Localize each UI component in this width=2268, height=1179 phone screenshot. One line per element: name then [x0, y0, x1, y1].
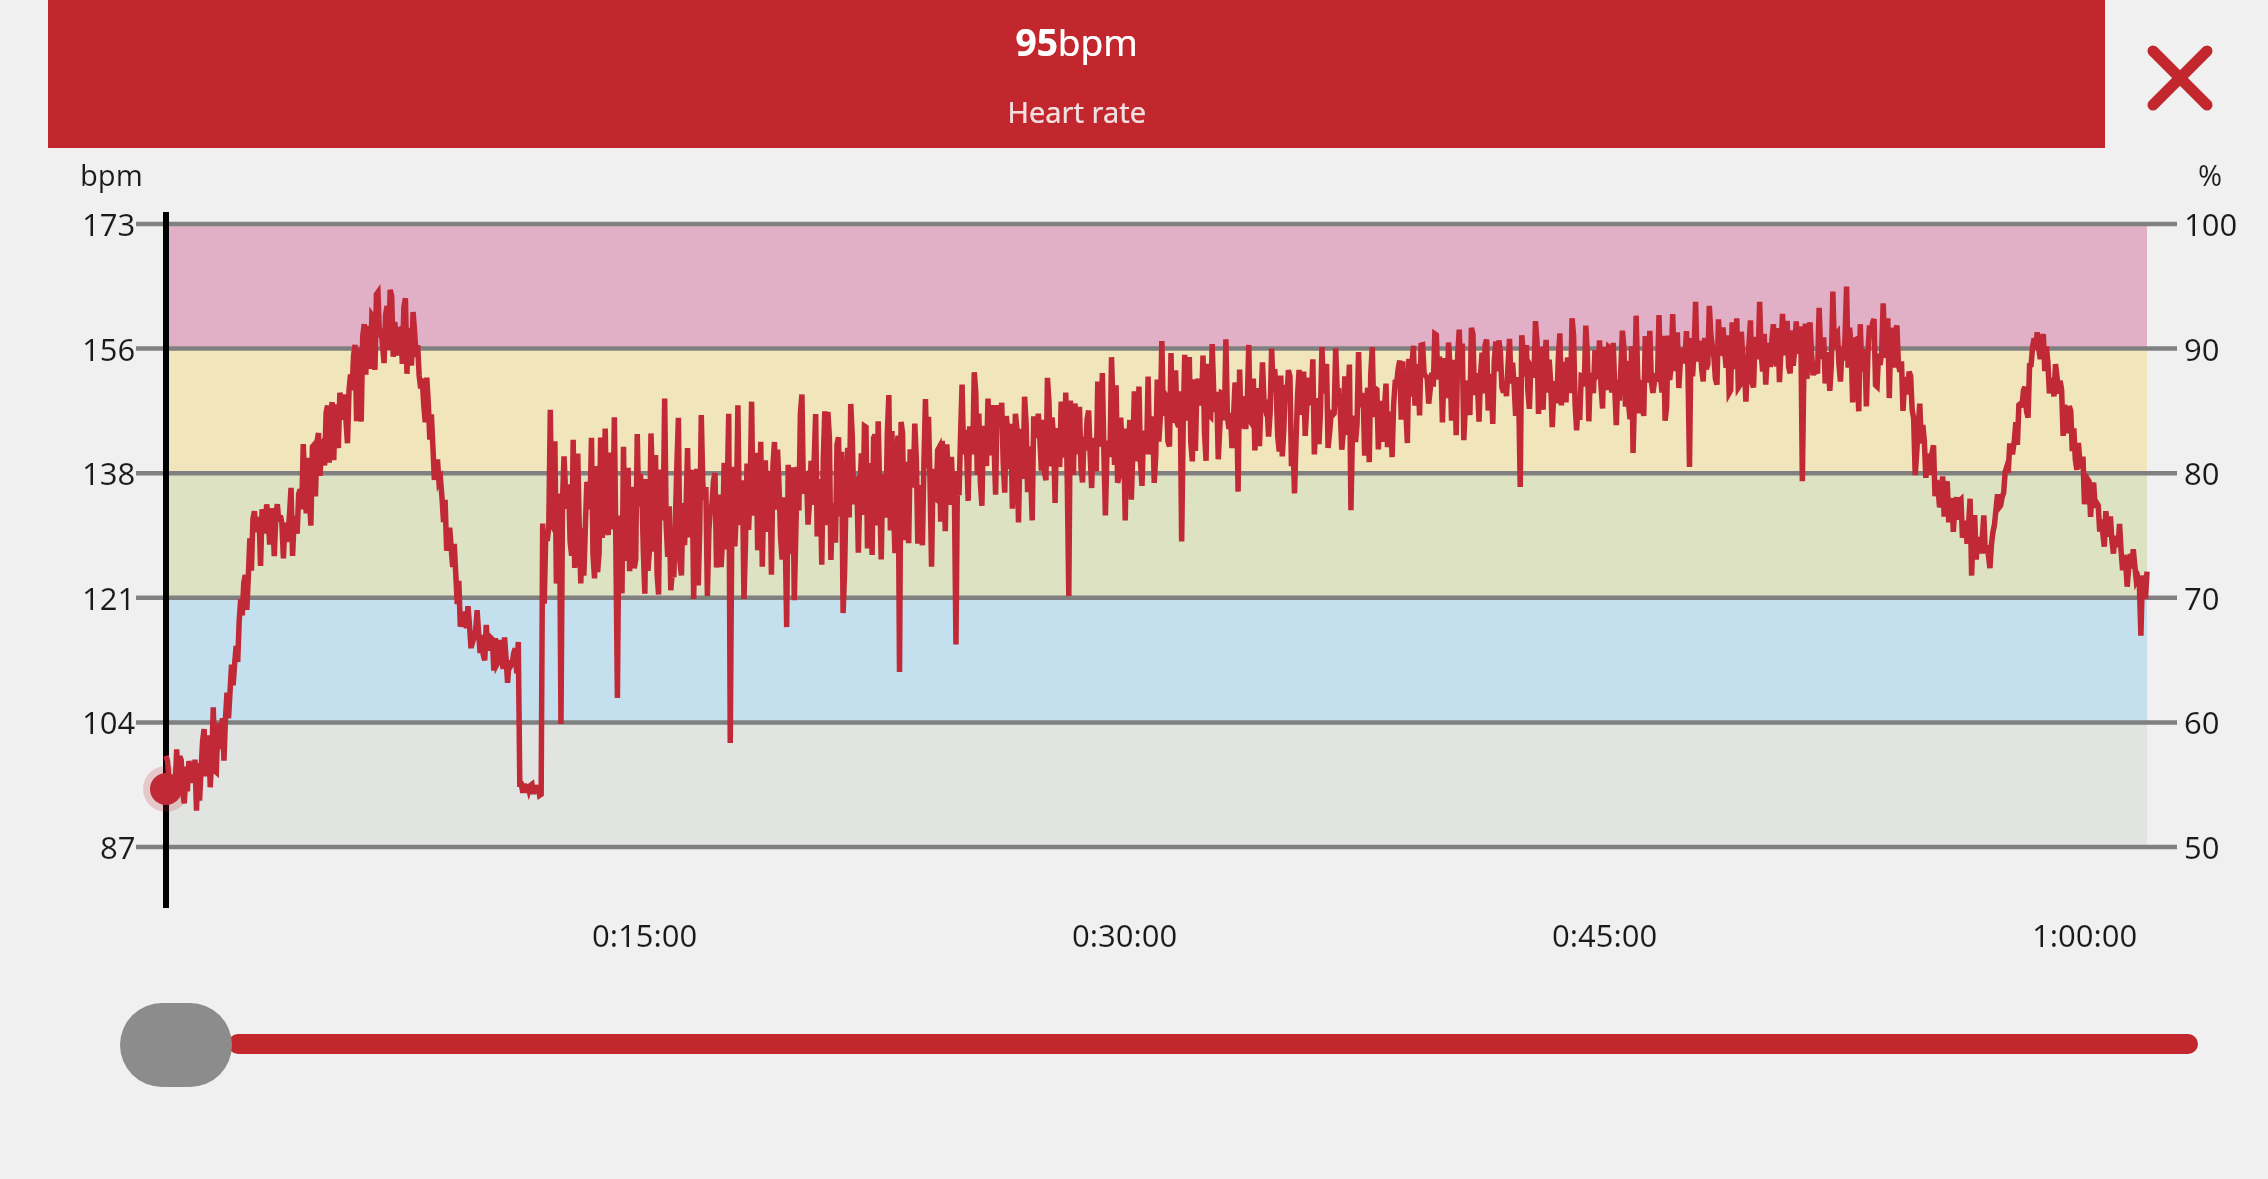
- button[interactable]: Close: [2128, 24, 2232, 128]
- button[interactable]: [48, 0, 2105, 148]
- button[interactable]: Time scrubber: [110, 992, 242, 1096]
